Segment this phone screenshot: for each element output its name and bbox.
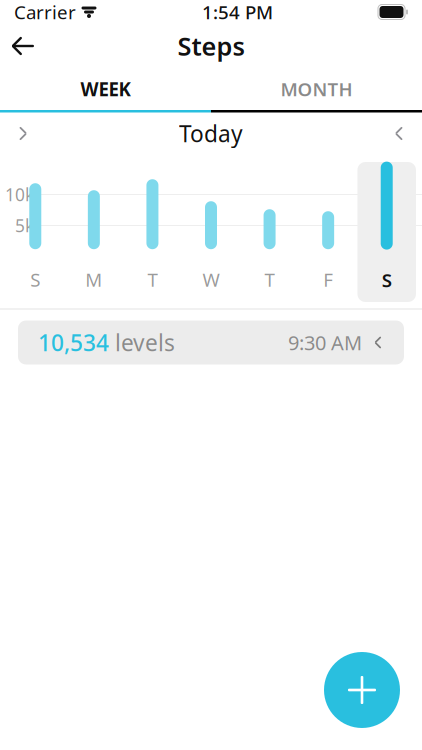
button[interactable]: Previous week <box>0 112 46 154</box>
staticText: MONTH <box>280 77 352 101</box>
button[interactable]: Next week <box>376 112 422 154</box>
staticText: W <box>202 267 219 292</box>
staticText: S <box>30 267 40 292</box>
staticText: 10,534 <box>38 327 109 357</box>
staticText: 9:30 AM <box>288 329 362 356</box>
staticText: S <box>382 268 392 292</box>
button[interactable]: Add entry <box>324 652 400 728</box>
staticText: levels <box>109 327 175 357</box>
staticText: F <box>323 267 333 292</box>
staticText: T <box>147 267 157 292</box>
staticText: WEEK <box>80 77 130 101</box>
button[interactable]: MONTH <box>211 68 422 110</box>
staticText: 5k <box>15 214 34 237</box>
button[interactable]: WEEK <box>0 68 211 110</box>
button[interactable]: Back <box>0 24 46 68</box>
staticText: Carrier <box>14 0 76 24</box>
staticText: M <box>85 267 102 292</box>
staticText: Today <box>179 118 243 148</box>
staticText: 10k <box>5 183 34 206</box>
staticText: T <box>265 267 275 292</box>
staticText: Steps <box>177 29 244 63</box>
staticText: 1:54 PM <box>202 0 273 24</box>
button[interactable]: 10,534 <box>18 320 404 364</box>
